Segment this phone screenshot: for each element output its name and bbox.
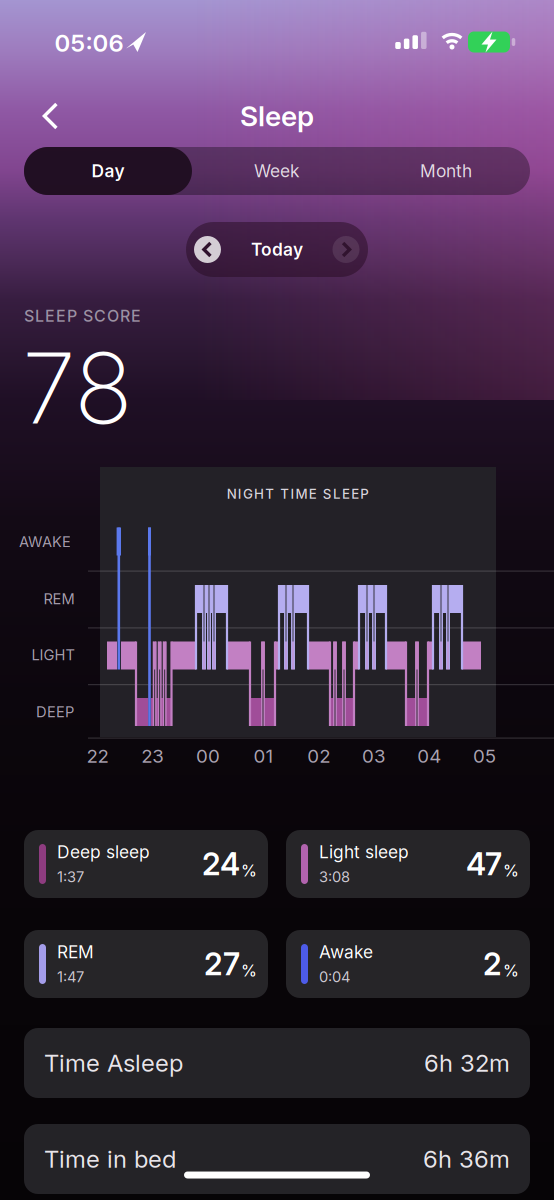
staticText: 78 [22, 331, 133, 445]
staticText: NIGHT TIME SLEEP [227, 486, 369, 502]
staticText: Time Asleep [44, 1049, 183, 1077]
staticText: 3:08 [319, 868, 350, 886]
staticText: Awake [319, 942, 373, 962]
staticText: % [241, 861, 257, 880]
staticText: 1:47 [57, 968, 84, 986]
staticText: REM [57, 942, 94, 962]
staticText: 27 [204, 946, 240, 982]
button[interactable]: Month [362, 147, 530, 195]
button[interactable]: Day [24, 147, 192, 195]
staticText: 6h 32m [424, 1049, 510, 1077]
staticText: 6h 36m [423, 1145, 510, 1173]
staticText: LIGHT [31, 646, 74, 664]
staticText: 23 [141, 745, 164, 767]
staticText: 24 [202, 846, 240, 882]
staticText: 03 [362, 745, 386, 767]
staticText: % [241, 961, 257, 980]
staticText: 0:04 [319, 968, 350, 986]
button[interactable]: Back [29, 94, 73, 138]
staticText: 02 [307, 745, 330, 767]
button[interactable]: Next day [332, 236, 359, 263]
staticText: Time in bed [44, 1145, 176, 1173]
staticText: Sleep [240, 99, 314, 132]
staticText: REM [43, 590, 74, 608]
staticText: 01 [253, 745, 273, 767]
staticText: Deep sleep [57, 842, 150, 862]
staticText: Month [420, 161, 472, 181]
staticText: 2 [483, 946, 502, 982]
staticText: % [503, 961, 519, 980]
staticText: Today [251, 239, 303, 260]
staticText: DEEP [36, 703, 74, 721]
button[interactable]: Previous day [194, 236, 221, 263]
staticText: 22 [86, 745, 108, 767]
staticText: SLEEP SCORE [24, 307, 141, 325]
staticText: Light sleep [319, 842, 409, 862]
staticText: 00 [196, 745, 220, 767]
staticText: 1:37 [57, 868, 84, 886]
staticText: % [503, 861, 519, 880]
staticText: 05:06 [54, 29, 123, 57]
staticText: Week [254, 161, 300, 181]
staticText: 47 [466, 846, 502, 882]
staticText: 04 [417, 745, 441, 767]
staticText: Day [91, 161, 124, 181]
staticText: AWAKE [19, 533, 71, 551]
button[interactable]: Week [193, 147, 361, 195]
staticText: 05 [473, 745, 496, 767]
